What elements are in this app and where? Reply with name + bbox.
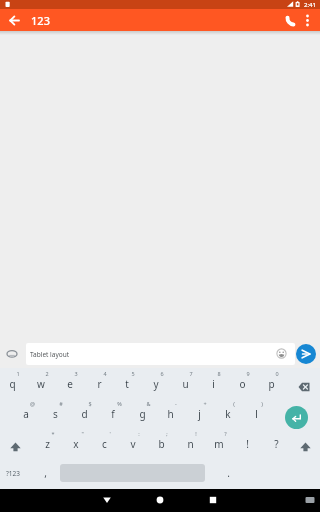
- button[interactable]: [292, 375, 317, 396]
- staticText: .: [227, 466, 230, 480]
- staticText: g: [139, 407, 146, 421]
- staticText: v: [130, 437, 136, 451]
- button[interactable]: [300, 12, 315, 29]
- staticText: n: [187, 437, 194, 451]
- staticText: ?: [224, 430, 227, 437]
- button[interactable]: c: [94, 434, 114, 454]
- staticText: m: [214, 437, 224, 451]
- button[interactable]: [283, 11, 299, 28]
- staticText: 7: [189, 370, 193, 377]
- staticText: o: [239, 377, 246, 391]
- button[interactable]: a: [16, 404, 36, 424]
- staticText: j: [198, 407, 201, 421]
- staticText: s: [53, 407, 58, 421]
- button[interactable]: !: [237, 434, 257, 454]
- button[interactable]: [302, 494, 318, 506]
- staticText: &: [146, 400, 151, 407]
- button[interactable]: q: [2, 374, 22, 394]
- staticText: b: [158, 437, 165, 451]
- staticText: 0: [275, 370, 279, 377]
- staticText: #: [59, 400, 63, 407]
- staticText: 8: [217, 370, 221, 377]
- button[interactable]: o: [232, 374, 252, 394]
- staticText: 2: [45, 370, 49, 377]
- staticText: :: [138, 430, 140, 437]
- button[interactable]: [296, 344, 316, 364]
- button[interactable]: h: [160, 404, 180, 424]
- button[interactable]: [99, 492, 115, 508]
- button[interactable]: e: [60, 374, 80, 394]
- button[interactable]: [205, 492, 221, 508]
- staticText: ': [109, 430, 111, 437]
- staticText: f: [111, 407, 115, 421]
- staticText: 9: [246, 370, 250, 377]
- button[interactable]: f: [103, 404, 123, 424]
- button[interactable]: ,: [35, 463, 55, 483]
- button[interactable]: [6, 12, 23, 29]
- button[interactable]: i: [203, 374, 223, 394]
- staticText: %: [117, 400, 122, 407]
- button[interactable]: j: [189, 404, 209, 424]
- staticText: 123: [31, 13, 50, 27]
- button[interactable]: ?: [266, 434, 286, 454]
- staticText: 2:41: [304, 1, 316, 9]
- staticText: d: [81, 407, 88, 421]
- staticText: $: [88, 400, 92, 407]
- staticText: ?123: [6, 469, 20, 478]
- staticText: 5: [131, 370, 135, 377]
- button[interactable]: u: [175, 374, 195, 394]
- staticText: e: [67, 377, 73, 391]
- staticText: ): [261, 400, 263, 407]
- button[interactable]: b: [151, 434, 171, 454]
- button[interactable]: t: [117, 374, 137, 394]
- staticText: u: [182, 377, 189, 391]
- staticText: 6: [160, 370, 164, 377]
- staticText: @: [30, 400, 35, 407]
- button[interactable]: m: [209, 434, 229, 454]
- staticText: 1: [16, 370, 20, 377]
- staticText: +: [203, 400, 207, 407]
- staticText: l: [255, 407, 258, 421]
- staticText: !: [246, 437, 249, 451]
- button[interactable]: [5, 436, 26, 454]
- staticText: ;: [166, 430, 168, 437]
- button[interactable]: [4, 346, 20, 362]
- staticText: 3: [74, 370, 78, 377]
- button[interactable]: [26, 343, 295, 365]
- staticText: t: [125, 377, 129, 391]
- staticText: r: [97, 377, 102, 391]
- button[interactable]: x: [66, 434, 86, 454]
- staticText: Tablet layout: [30, 350, 70, 359]
- staticText: c: [102, 437, 107, 451]
- button[interactable]: g: [132, 404, 152, 424]
- button[interactable]: [274, 346, 289, 361]
- staticText: a: [23, 407, 29, 421]
- button[interactable]: d: [74, 404, 94, 424]
- staticText: ?: [274, 437, 279, 451]
- button[interactable]: k: [218, 404, 238, 424]
- button[interactable]: r: [89, 374, 109, 394]
- button[interactable]: ?123: [2, 466, 24, 480]
- staticText: ": [81, 430, 84, 437]
- staticText: k: [225, 407, 231, 421]
- button[interactable]: v: [123, 434, 143, 454]
- button[interactable]: .: [218, 463, 238, 483]
- button[interactable]: y: [146, 374, 166, 394]
- button[interactable]: w: [31, 374, 51, 394]
- button[interactable]: [285, 406, 308, 429]
- staticText: z: [45, 437, 50, 451]
- button[interactable]: [152, 492, 168, 508]
- staticText: q: [9, 377, 16, 391]
- staticText: p: [268, 377, 275, 391]
- staticText: !: [195, 430, 197, 437]
- button[interactable]: p: [261, 374, 281, 394]
- button[interactable]: s: [45, 404, 65, 424]
- button[interactable]: [295, 436, 316, 454]
- button[interactable]: n: [180, 434, 200, 454]
- button[interactable]: z: [37, 434, 57, 454]
- staticText: 4: [103, 370, 107, 377]
- button[interactable]: l: [246, 404, 266, 424]
- staticText: (: [233, 400, 235, 407]
- staticText: w: [37, 377, 45, 391]
